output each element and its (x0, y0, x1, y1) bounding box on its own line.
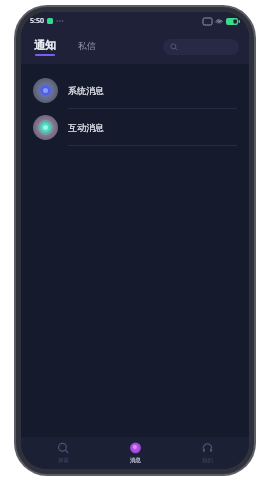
staticText: 探索 (58, 457, 69, 464)
staticText: 通知 (34, 38, 56, 52)
staticText: 5:50 (30, 16, 44, 26)
button[interactable]: Explore (33, 439, 93, 467)
staticText: 系统消息 (68, 85, 104, 96)
staticText: 互动消息 (68, 122, 104, 133)
other: Messages (129, 442, 142, 455)
other: Explore (57, 442, 70, 455)
staticText: 我的 (202, 457, 213, 464)
button[interactable]: 系统消息 (21, 72, 249, 109)
staticText: 消息 (130, 457, 141, 464)
button[interactable]: Profile (177, 439, 237, 467)
button[interactable]: 私信 (75, 40, 99, 55)
button[interactable]: Messages (105, 439, 165, 467)
button[interactable]: 通知 (31, 36, 59, 58)
button[interactable]: Search (163, 39, 239, 55)
other: Profile (201, 442, 214, 455)
staticText: 私信 (78, 40, 96, 51)
button[interactable]: 互动消息 (21, 109, 249, 146)
